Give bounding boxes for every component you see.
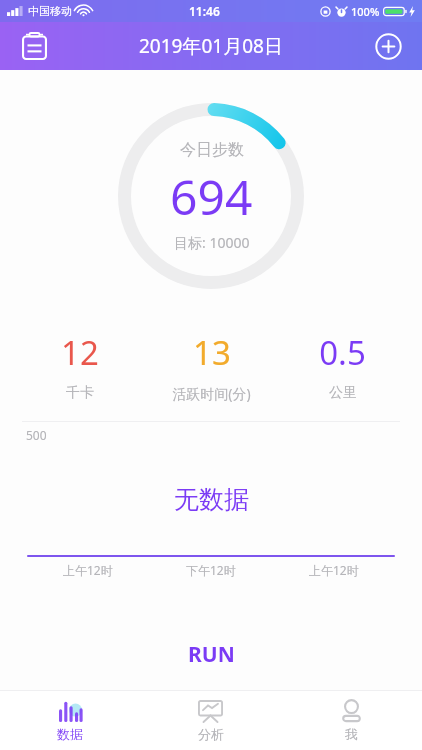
staticText: 0.5 (319, 330, 366, 375)
staticText: 13 (193, 330, 231, 375)
staticText: 694 (170, 164, 253, 229)
staticText: 千卡 (66, 384, 94, 402)
button[interactable]: 13 (146, 326, 277, 407)
staticText: 上午12时 (309, 562, 359, 578)
staticText: 我 (345, 726, 358, 742)
staticText: 活跃时间(分) (172, 384, 251, 403)
staticText: 12 (61, 330, 99, 375)
staticText: 公里 (329, 384, 357, 402)
button[interactable]: Add (366, 24, 410, 68)
staticText: 数据 (57, 726, 83, 742)
button[interactable]: 数据 (0, 691, 140, 750)
staticText: 下午12时 (186, 562, 236, 578)
staticText: RUN (188, 640, 235, 669)
staticText: 2019年01月08日 (139, 33, 283, 59)
staticText: 分析 (198, 726, 224, 742)
button[interactable]: RUN (162, 633, 261, 676)
staticText: 11:46 (189, 3, 220, 19)
button[interactable]: 0.5 (277, 326, 408, 406)
button[interactable]: 12 (14, 326, 146, 406)
staticText: 中国移动 (28, 4, 72, 18)
staticText: 今日步数 (180, 140, 244, 160)
staticText: 无数据 (174, 484, 249, 515)
button[interactable]: 我 (281, 691, 422, 750)
staticText: 500 (26, 427, 47, 443)
staticText: 100% (351, 4, 380, 19)
staticText: 目标: 10000 (174, 233, 250, 252)
staticText: 上午12时 (63, 562, 113, 578)
button[interactable]: 分析 (140, 691, 281, 750)
button[interactable]: Records (12, 24, 56, 68)
